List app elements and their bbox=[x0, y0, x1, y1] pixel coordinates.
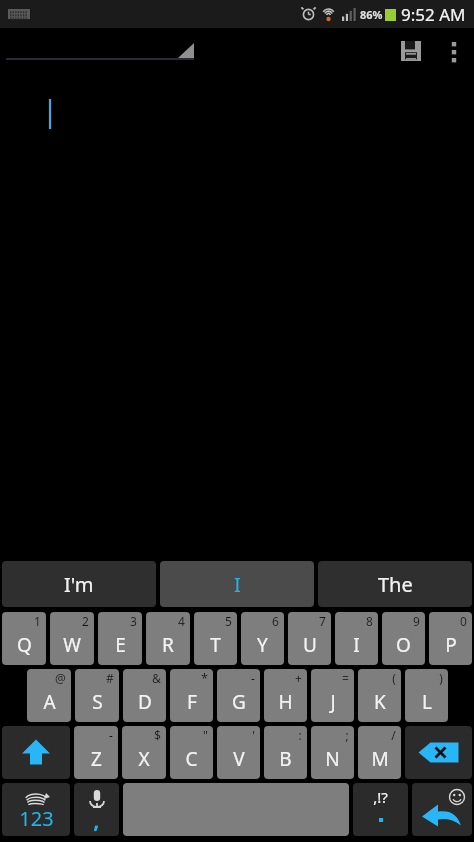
staticText: P bbox=[445, 632, 457, 658]
button[interactable]: * bbox=[170, 669, 213, 722]
staticText: R bbox=[162, 632, 174, 658]
staticText: # bbox=[106, 670, 114, 686]
staticText: 1 bbox=[34, 613, 41, 629]
staticText: ) bbox=[439, 670, 443, 686]
staticText: O bbox=[396, 632, 411, 658]
staticText: & bbox=[152, 670, 161, 686]
button[interactable]: Numbers and symbols bbox=[2, 783, 70, 836]
staticText: ( bbox=[392, 670, 396, 686]
staticText: N bbox=[325, 746, 340, 772]
staticText: E bbox=[115, 632, 126, 658]
staticText: ' bbox=[252, 727, 255, 743]
button[interactable]: More options bbox=[434, 31, 474, 71]
button[interactable]: ( bbox=[358, 669, 401, 722]
staticText: I bbox=[234, 571, 241, 598]
button[interactable]: 2 bbox=[50, 612, 94, 665]
staticText: 2 bbox=[82, 613, 89, 629]
button[interactable]: + bbox=[264, 669, 307, 722]
staticText: D bbox=[138, 689, 152, 715]
staticText: J bbox=[330, 689, 336, 715]
button[interactable]: 4 bbox=[146, 612, 190, 665]
staticText: B bbox=[279, 746, 292, 772]
button[interactable]: Shift bbox=[2, 726, 70, 779]
staticText: W bbox=[63, 632, 81, 658]
staticText: - bbox=[109, 727, 113, 743]
button[interactable]: # bbox=[75, 669, 119, 722]
staticText: = bbox=[342, 670, 349, 686]
staticText: I'm bbox=[64, 571, 94, 598]
button[interactable]: Space bbox=[123, 783, 349, 836]
staticText: 9:52 AM bbox=[401, 3, 466, 26]
staticText: ,!? bbox=[373, 787, 388, 807]
button[interactable]: 7 bbox=[288, 612, 331, 665]
staticText: @ bbox=[55, 670, 66, 686]
staticText: Q bbox=[17, 632, 32, 658]
staticText: 4 bbox=[178, 613, 185, 629]
staticText: F bbox=[187, 689, 197, 715]
button[interactable]: 3 bbox=[98, 612, 142, 665]
staticText: : bbox=[298, 727, 302, 743]
button[interactable]: 8 bbox=[335, 612, 378, 665]
button[interactable]: ; bbox=[311, 726, 354, 779]
button[interactable]: : bbox=[264, 726, 307, 779]
button[interactable]: I'm bbox=[2, 561, 156, 607]
staticText: T bbox=[210, 632, 221, 658]
staticText: Y bbox=[257, 632, 268, 658]
button[interactable]: $ bbox=[122, 726, 166, 779]
staticText: U bbox=[303, 632, 317, 658]
staticText: $ bbox=[154, 727, 161, 743]
button[interactable]: ' bbox=[217, 726, 260, 779]
button[interactable]: ) bbox=[405, 669, 448, 722]
staticText: A bbox=[43, 689, 56, 715]
button[interactable]: " bbox=[170, 726, 213, 779]
staticText: L bbox=[422, 689, 432, 715]
staticText: / bbox=[391, 727, 396, 743]
button[interactable]: 6 bbox=[241, 612, 284, 665]
staticText: 6 bbox=[272, 613, 279, 629]
staticText: ; bbox=[345, 727, 349, 743]
staticText: K bbox=[374, 689, 386, 715]
button[interactable]: Enter bbox=[412, 783, 472, 836]
staticText: * bbox=[201, 670, 208, 686]
button[interactable]: The bbox=[318, 561, 472, 607]
staticText: V bbox=[233, 746, 245, 772]
button[interactable]: 9 bbox=[382, 612, 425, 665]
button[interactable]: - bbox=[74, 726, 118, 779]
staticText: 8 bbox=[366, 613, 373, 629]
button[interactable]: Save bbox=[388, 28, 434, 73]
staticText: 9 bbox=[413, 613, 420, 629]
button[interactable]: 0 bbox=[429, 612, 472, 665]
staticText: I bbox=[353, 632, 360, 658]
staticText: 5 bbox=[225, 613, 232, 629]
button[interactable]: & bbox=[123, 669, 166, 722]
button[interactable]: Backspace bbox=[405, 726, 472, 779]
staticText: 7 bbox=[319, 613, 326, 629]
button[interactable]: - bbox=[217, 669, 260, 722]
staticText: H bbox=[278, 689, 293, 715]
staticText: , bbox=[93, 804, 100, 834]
staticText: 0 bbox=[460, 613, 467, 629]
button[interactable]: I bbox=[160, 561, 314, 607]
staticText: - bbox=[251, 670, 255, 686]
staticText: S bbox=[92, 689, 103, 715]
staticText: 3 bbox=[130, 613, 137, 629]
staticText: + bbox=[295, 670, 302, 686]
staticText: M bbox=[371, 746, 389, 772]
staticText: X bbox=[138, 746, 150, 772]
button[interactable]: Period bbox=[353, 783, 408, 836]
staticText: The bbox=[378, 571, 413, 598]
staticText: " bbox=[203, 727, 208, 743]
button[interactable]: 5 bbox=[194, 612, 237, 665]
button[interactable]: = bbox=[311, 669, 354, 722]
staticText: G bbox=[232, 689, 246, 715]
staticText: Z bbox=[91, 746, 102, 772]
button[interactable]: 1 bbox=[2, 612, 46, 665]
button[interactable]: Comma bbox=[74, 783, 119, 836]
staticText: 86% bbox=[360, 7, 383, 22]
button[interactable]: / bbox=[358, 726, 401, 779]
staticText: 123 bbox=[19, 805, 54, 832]
staticText: C bbox=[185, 746, 198, 772]
button[interactable]: @ bbox=[27, 669, 71, 722]
